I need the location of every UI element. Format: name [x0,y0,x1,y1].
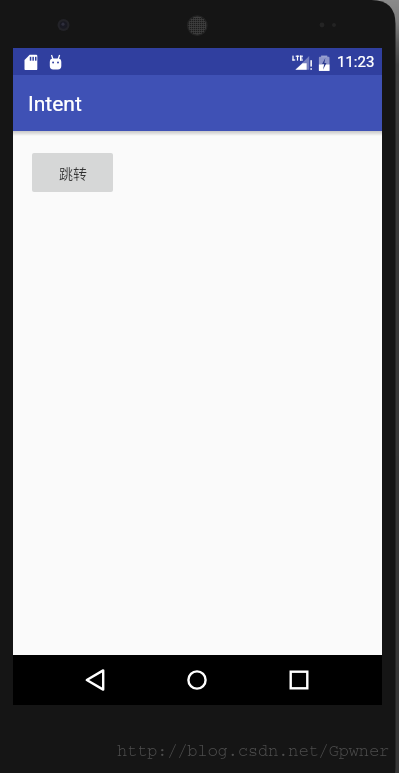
button[interactable]: Home [151,655,242,705]
staticText: 11:23 [337,53,375,71]
button[interactable]: Recent apps [253,655,344,705]
staticText: Intent [28,92,82,117]
staticText: http://blog.csdn.net/Gpwner [117,742,390,761]
staticText: 跳转 [59,163,87,183]
button[interactable]: 跳转 [32,153,113,192]
button[interactable]: Back [49,655,140,705]
